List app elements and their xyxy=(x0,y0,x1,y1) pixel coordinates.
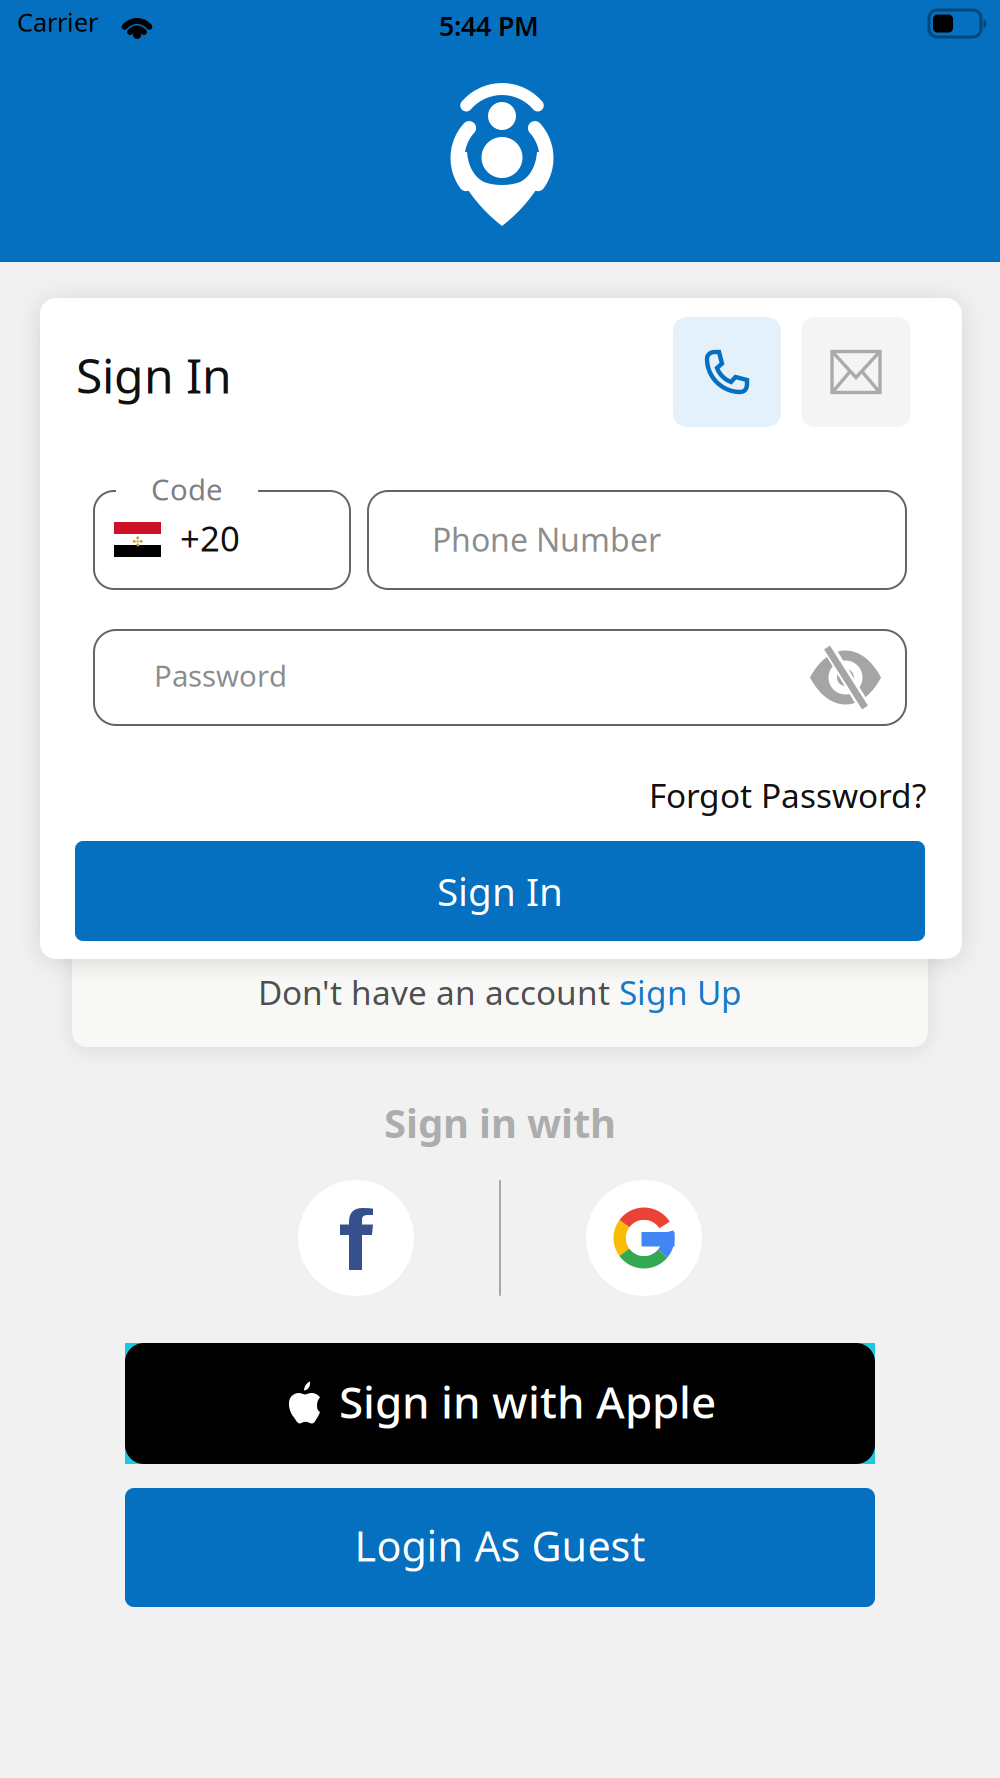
staticText: +20 xyxy=(180,515,240,561)
staticText: 5:44 PM xyxy=(439,8,539,43)
button[interactable]: Don't have an account xyxy=(72,935,928,1047)
staticText: Login As Guest xyxy=(354,1518,645,1573)
staticText: Code xyxy=(151,469,223,508)
button[interactable]: Sign in with phone xyxy=(673,317,781,427)
button[interactable]: Sign in with Facebook xyxy=(298,1180,414,1296)
button[interactable]: Login As Guest xyxy=(125,1488,875,1607)
button[interactable]: Sign in with email xyxy=(801,317,911,427)
staticText: Sign In xyxy=(437,865,563,917)
button[interactable]: Sign in with Apple xyxy=(125,1343,875,1464)
staticText: Sign In xyxy=(76,343,232,407)
staticText: Password xyxy=(154,656,287,695)
button[interactable]: Show password xyxy=(798,630,893,725)
staticText: Forgot Password? xyxy=(649,773,926,817)
staticText: Sign in with Apple xyxy=(339,1372,716,1431)
staticText: Sign in with xyxy=(384,1096,616,1149)
button[interactable]: Sign in with Google xyxy=(586,1180,702,1296)
button[interactable]: Sign In xyxy=(75,841,925,941)
staticText: Carrier xyxy=(17,5,98,39)
staticText: Phone Number xyxy=(432,518,661,560)
staticText: Sign Up xyxy=(619,970,742,1014)
staticText: ✣ xyxy=(132,534,143,549)
button[interactable]: Forgot Password? xyxy=(486,772,926,818)
staticText: Don't have an account xyxy=(258,970,619,1014)
